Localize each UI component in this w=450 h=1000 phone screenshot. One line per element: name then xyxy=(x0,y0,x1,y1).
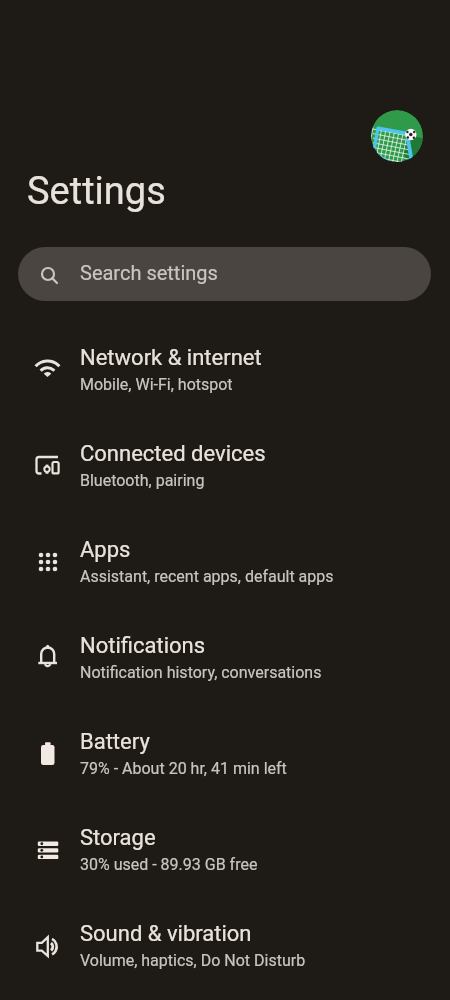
button[interactable]: Network & internet xyxy=(0,322,450,418)
staticText: Assistant, recent apps, default apps xyxy=(80,567,334,586)
staticText: Sound & vibration xyxy=(80,921,252,947)
staticText: Settings xyxy=(27,169,166,214)
button[interactable] xyxy=(371,110,423,162)
button[interactable]: Search settings xyxy=(18,247,431,301)
button[interactable]: Storage xyxy=(0,802,450,898)
staticText: Storage xyxy=(80,825,156,851)
staticText: Battery xyxy=(80,729,150,755)
staticText: Search settings xyxy=(80,261,218,284)
staticText: 79% - About 20 hr, 41 min left xyxy=(80,759,287,778)
staticText: Mobile, Wi-Fi, hotspot xyxy=(80,375,233,394)
button[interactable]: Battery xyxy=(0,706,450,802)
staticText: Bluetooth, pairing xyxy=(80,471,205,490)
staticText: Notification history, conversations xyxy=(80,663,322,682)
staticText: Apps xyxy=(80,537,131,563)
button[interactable]: Apps xyxy=(0,514,450,610)
button[interactable]: Connected devices xyxy=(0,418,450,514)
staticText: Network & internet xyxy=(80,345,262,371)
button[interactable]: Sound & vibration xyxy=(0,898,450,994)
staticText: 30% used - 89.93 GB free xyxy=(80,855,258,874)
staticText: Volume, haptics, Do Not Disturb xyxy=(80,951,306,970)
button[interactable]: Notifications xyxy=(0,610,450,706)
staticText: Connected devices xyxy=(80,441,266,467)
staticText: Notifications xyxy=(80,633,206,659)
